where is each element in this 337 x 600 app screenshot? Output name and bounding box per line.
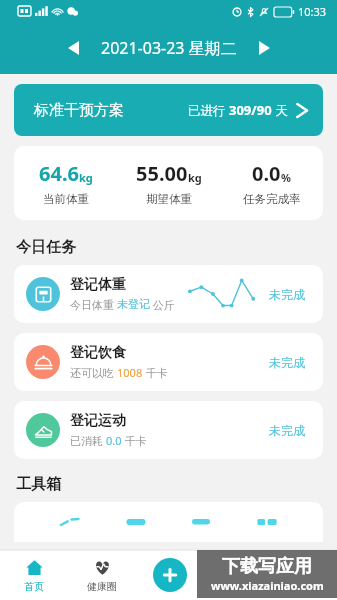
staticText: 1008 (117, 365, 143, 380)
staticText: 未完成 (269, 355, 311, 370)
button[interactable]: 登记体重 (14, 265, 323, 323)
staticText: 已进行 (188, 102, 229, 119)
button[interactable]: Previous day (58, 33, 88, 63)
staticText: 任务完成率 (243, 192, 301, 206)
staticText: kg (188, 170, 202, 185)
button[interactable]: Tool 1 (55, 510, 85, 540)
staticText: 商城 (227, 580, 247, 593)
staticText: 千卡 (122, 433, 147, 448)
button[interactable]: 我的 (270, 550, 337, 600)
staticText: 今日体重 (70, 297, 117, 312)
button[interactable]: 商城 (203, 550, 270, 600)
staticText: 登记运动 (70, 412, 126, 430)
staticText: 0.0 (106, 433, 122, 448)
button[interactable]: Tool 4 (252, 510, 282, 540)
staticText: 登记体重 (70, 276, 126, 294)
button[interactable]: 标准干预方案 (14, 84, 323, 136)
staticText: 我的 (294, 580, 314, 593)
staticText: 登记饮食 (70, 344, 126, 362)
staticText: 10:33 (298, 4, 327, 19)
staticText: 0.0 (252, 160, 281, 187)
staticText: 2021-03-23 星期二 (101, 37, 237, 59)
staticText: 64.6 (39, 160, 79, 187)
staticText: 期望体重 (146, 192, 192, 206)
staticText: 健康圈 (87, 580, 117, 593)
staticText: 工具箱 (16, 475, 61, 494)
staticText: 公斤 (150, 297, 175, 312)
button[interactable]: Next day (249, 33, 279, 63)
staticText: 还可以吃 (70, 365, 117, 380)
staticText: 未完成 (269, 423, 311, 438)
staticText: 今日任务 (16, 238, 76, 257)
button[interactable]: 首页 (0, 550, 68, 600)
staticText: 天 (272, 102, 288, 119)
staticText: 下载写应用 (222, 555, 312, 578)
staticText: kg (79, 170, 93, 185)
button[interactable]: Add (153, 558, 187, 592)
staticText: 千卡 (143, 365, 168, 380)
staticText: 未完成 (269, 287, 311, 302)
button[interactable]: Tool 3 (186, 510, 216, 540)
button[interactable]: 登记运动 (14, 401, 323, 459)
staticText: % (281, 170, 291, 185)
staticText: www.xiazainiao.com (211, 578, 324, 593)
staticText: 标准干预方案 (34, 101, 124, 120)
staticText: 55.00 (136, 160, 188, 187)
button[interactable]: 健康圈 (68, 550, 136, 600)
staticText: 首页 (24, 580, 44, 593)
staticText: 309/90 (229, 101, 272, 119)
staticText: 当前体重 (43, 192, 89, 206)
button[interactable]: Tool 2 (121, 510, 151, 540)
staticText: 已消耗 (70, 433, 106, 448)
button[interactable]: 登记饮食 (14, 333, 323, 391)
staticText: 未登记 (117, 297, 150, 311)
